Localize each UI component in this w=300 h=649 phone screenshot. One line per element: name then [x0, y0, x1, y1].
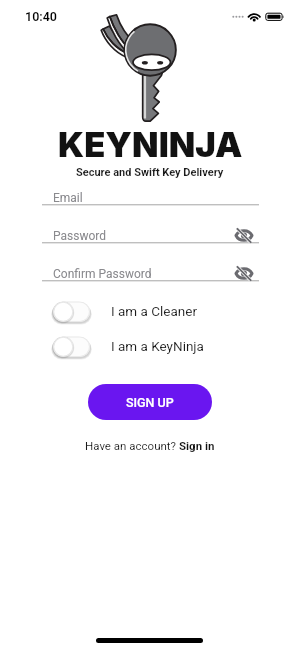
other: Show password [232, 264, 254, 282]
staticText: Confirm Password [53, 267, 152, 281]
staticText: I am a KeyNinja [111, 338, 204, 354]
staticText: KEYNINJA [58, 124, 243, 166]
staticText: Secure and Swift Key Delivery [76, 166, 224, 179]
staticText: I am a Cleaner [111, 303, 198, 319]
button[interactable]: SIGN UP [88, 384, 212, 420]
other: KeyNinja logo [100, 14, 190, 128]
button[interactable]: Email [42, 183, 259, 206]
staticText: Email [53, 191, 83, 205]
button[interactable]: Confirm Password [42, 259, 259, 282]
button[interactable]: Password [42, 221, 259, 244]
staticText: Have an account? [85, 439, 179, 452]
button[interactable]: I am a Cleaner [50, 298, 205, 324]
staticText: Password [53, 229, 107, 243]
button[interactable]: Sign in [179, 439, 215, 452]
staticText: 10:40 [25, 9, 57, 24]
staticText: SIGN UP [126, 395, 174, 410]
other: Show password [232, 226, 254, 244]
button[interactable]: I am a KeyNinja [50, 333, 205, 359]
staticText: Sign in [179, 439, 215, 452]
